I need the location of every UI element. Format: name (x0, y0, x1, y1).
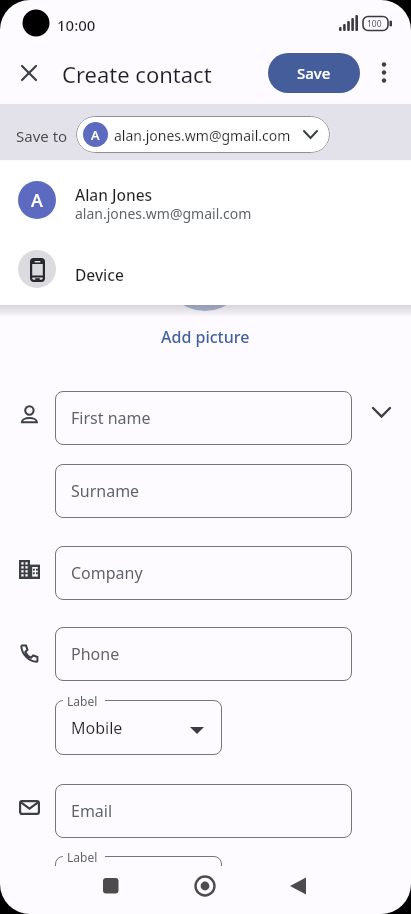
staticText: alan.jones.wm@gmail.com (114, 126, 291, 145)
staticText: Alan Jones (75, 184, 153, 205)
staticText: 10:00 (57, 15, 96, 35)
staticText: Add picture (161, 326, 250, 348)
staticText: Email (71, 800, 113, 822)
staticText: A (91, 126, 100, 144)
staticText: Company (71, 562, 143, 584)
staticText: alan.jones.wm@gmail.com (75, 204, 252, 223)
staticText: Label (67, 693, 98, 709)
staticText: Create contact (62, 59, 212, 89)
staticText: Phone (71, 643, 120, 665)
staticText: Label (67, 849, 98, 865)
staticText: Surname (71, 480, 140, 502)
staticText: Mobile (71, 717, 123, 739)
staticText: 100 (367, 18, 382, 30)
staticText: Save to (16, 126, 68, 146)
staticText: Device (75, 264, 124, 285)
staticText: Save (297, 63, 331, 83)
staticText: A (31, 188, 43, 213)
staticText: First name (71, 407, 151, 429)
